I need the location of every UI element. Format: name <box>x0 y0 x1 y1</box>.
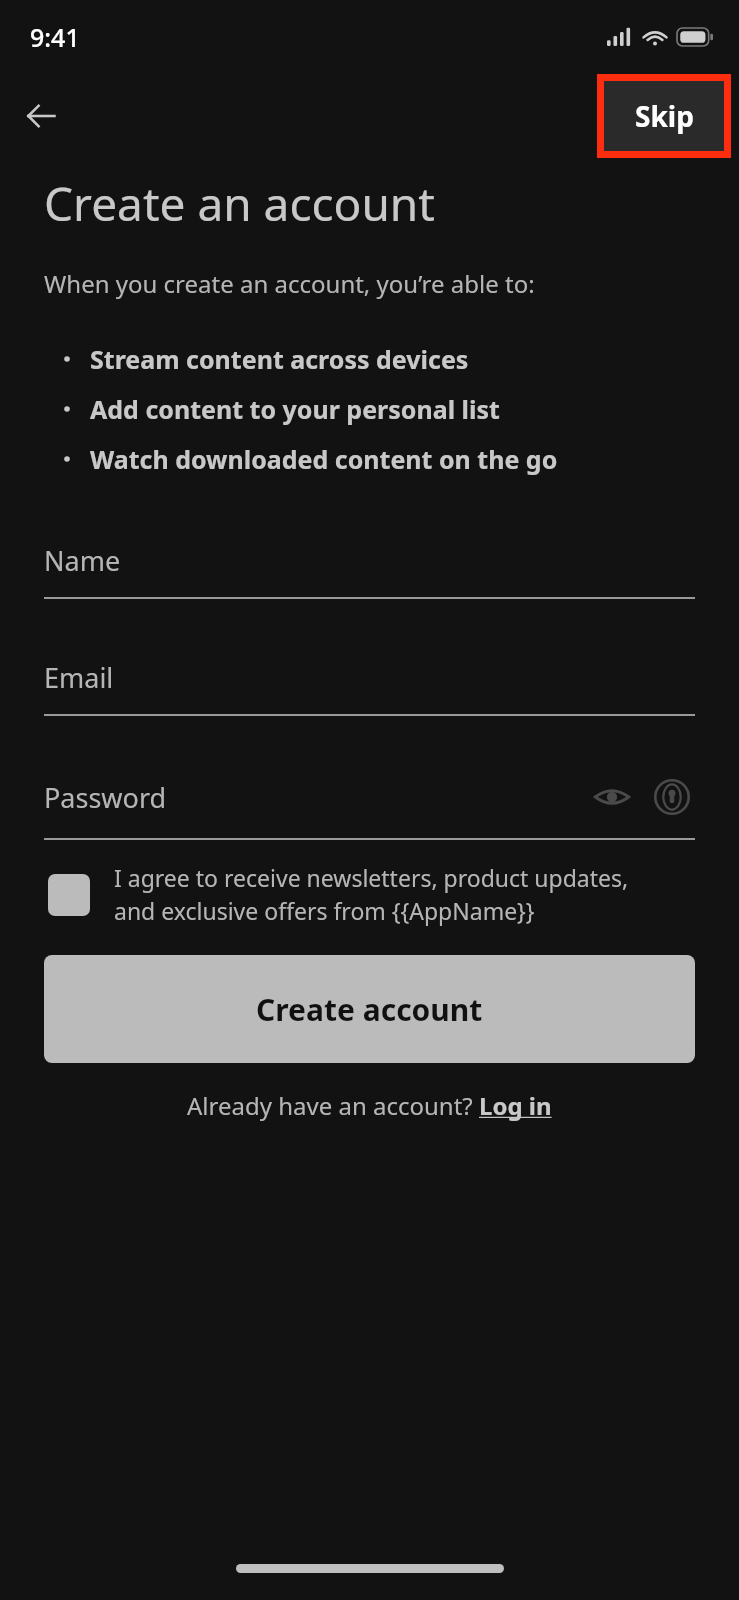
staticText: Watch downloaded content on the go <box>90 442 558 476</box>
staticText: Add content to your personal list <box>90 392 500 426</box>
staticText: Stream content across devices <box>90 342 469 376</box>
other: Agree to newsletters checkbox <box>48 874 90 916</box>
staticText: Password <box>44 779 589 816</box>
button[interactable]: Agree to newsletters checkbox <box>48 862 695 927</box>
staticText: I agree to receive newsletters, product … <box>114 862 629 927</box>
button[interactable]: Already have an account? Log in <box>187 1089 552 1122</box>
staticText: When you create an account, you’re able … <box>44 267 535 300</box>
button[interactable]: Show password <box>589 774 635 820</box>
button[interactable]: Name <box>44 542 695 599</box>
button[interactable]: Password <box>44 774 695 840</box>
staticText: Create account <box>256 989 483 1030</box>
staticText: Skip <box>635 97 694 135</box>
button[interactable]: Back <box>12 87 70 145</box>
staticText: Create an account <box>44 172 435 235</box>
button[interactable]: Email <box>44 659 695 716</box>
staticText: Already have an account? Log in <box>187 1089 552 1122</box>
button[interactable]: Skip <box>604 81 724 151</box>
button[interactable]: Password manager <box>649 774 695 820</box>
button[interactable]: Create account <box>44 955 695 1063</box>
staticText: Email <box>44 659 695 696</box>
staticText: 9:41 <box>30 20 80 54</box>
staticText: Name <box>44 542 695 579</box>
